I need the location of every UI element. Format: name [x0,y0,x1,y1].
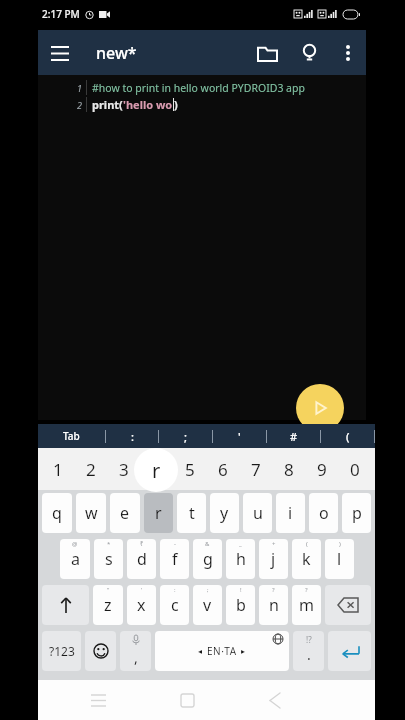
button[interactable]: Suggestions [288,32,330,74]
button[interactable]: : [106,424,158,448]
button[interactable]: # [267,424,320,448]
staticText: : [131,429,134,444]
staticText: 1 [53,458,63,481]
staticText: ; [184,429,188,444]
button[interactable]: m [292,585,321,625]
button[interactable]: ( [321,424,374,448]
staticText: Tab [63,429,80,443]
staticText: p [352,502,362,524]
button[interactable]: g [193,539,222,579]
button[interactable]: h [226,539,255,579]
staticText: 1 [77,82,82,94]
staticText: u [253,502,263,524]
button[interactable]: v [193,585,222,625]
button[interactable]: Back [255,680,295,720]
staticText: * [107,540,111,548]
button[interactable]: 9 [305,448,338,490]
staticText: f [172,548,178,570]
staticText: ₹ [140,540,144,548]
button[interactable]: 7 [239,448,272,490]
staticText: r [152,457,161,484]
staticText: m [299,594,314,616]
staticText: EN·TA [207,644,237,658]
staticText: #how to print in hello world PYDROID3 ap… [92,81,305,95]
staticText: 7 [251,458,261,481]
staticText: _ [239,540,242,548]
button[interactable]: i [276,493,305,533]
button[interactable]: !? [293,631,324,671]
button[interactable]: d [127,539,156,579]
button[interactable]: 1 [42,448,74,490]
staticText: b [236,594,246,616]
button[interactable]: q [42,493,72,533]
button[interactable]: e [110,493,140,533]
staticText: r [155,502,162,524]
button[interactable]: Run [296,384,344,432]
button[interactable]: 2 [74,448,107,490]
button[interactable]: t [177,493,206,533]
staticText: d [137,548,147,570]
staticText: ( [306,540,308,548]
staticText: ◂ [198,647,203,656]
staticText: print( [92,97,123,112]
staticText: a [71,548,80,570]
button[interactable]: Open navigation drawer [38,31,82,75]
button[interactable]: Recent apps [78,680,118,720]
button[interactable]: w [76,493,106,533]
button[interactable]: u [243,493,272,533]
button[interactable]: ' [213,424,266,448]
button[interactable]: ; [159,424,212,448]
button[interactable]: s [94,539,123,579]
staticText: new* [96,42,137,64]
staticText: ; [207,586,209,594]
staticText: 9 [317,458,327,481]
button[interactable]: y [210,493,239,533]
button[interactable]: 1 [38,75,366,420]
staticText: k [302,548,311,570]
staticText: y [220,502,229,524]
staticText: ? [272,586,275,594]
staticText: + [272,540,276,548]
staticText: & [205,540,210,548]
staticText: ▸ [241,647,246,656]
button[interactable]: Backspace [325,585,371,625]
button[interactable]: , [120,631,151,671]
staticText: o [319,502,329,524]
button[interactable]: x [127,585,156,625]
button[interactable]: Open file [246,32,288,74]
staticText: v [203,594,212,616]
button[interactable]: j [259,539,288,579]
button[interactable]: r [144,493,173,533]
button[interactable]: o [309,493,338,533]
button[interactable]: Enter [328,631,371,671]
button[interactable]: c [160,585,189,625]
button[interactable]: z [93,585,123,625]
button[interactable]: ◂ [155,631,289,671]
staticText: ! [240,586,242,594]
button[interactable]: 8 [272,448,305,490]
staticText: 0 [350,458,360,481]
button[interactable]: k [292,539,321,579]
button[interactable]: a [60,539,90,579]
button[interactable]: Tab [38,424,105,448]
staticText: q [52,502,62,524]
button[interactable]: Symbols [42,631,81,671]
button[interactable]: p [342,493,371,533]
staticText: ? [305,586,308,594]
button[interactable]: Home [167,680,207,720]
button[interactable]: 5 [173,448,206,490]
button[interactable]: l [325,539,354,579]
button[interactable]: More options [330,35,366,71]
staticText: @ [72,540,78,548]
staticText: e [120,502,130,524]
button[interactable]: f [160,539,189,579]
button[interactable]: b [226,585,255,625]
button[interactable]: n [259,585,288,625]
button[interactable]: 0 [338,448,371,490]
button[interactable]: 3 [107,448,140,490]
button[interactable]: 6 [206,448,239,490]
button[interactable]: 4 [140,448,173,490]
staticText: t [189,502,195,524]
button[interactable]: Shift [42,585,89,625]
button[interactable]: Emoji [85,631,116,671]
